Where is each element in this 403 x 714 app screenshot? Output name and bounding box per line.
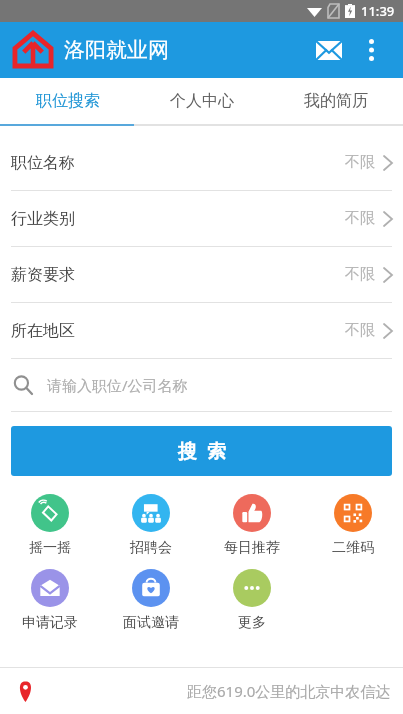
staticText: 11:39 xyxy=(361,2,395,20)
staticText: 请输入职位/公司名称 xyxy=(47,375,188,395)
staticText: 招聘会 xyxy=(130,539,172,557)
staticText: 摇一摇 xyxy=(29,539,71,557)
button[interactable]: Messages xyxy=(307,28,351,72)
staticText: 行业类别 xyxy=(11,209,75,229)
staticText: 我的简历 xyxy=(304,91,368,111)
button[interactable]: 搜 索 xyxy=(11,426,392,476)
button[interactable]: 面试邀请 xyxy=(100,569,201,632)
button[interactable]: 二维码 xyxy=(302,494,403,557)
staticText: 不限 xyxy=(345,321,375,340)
button[interactable]: 更多 xyxy=(201,569,302,632)
button[interactable]: 申请记录 xyxy=(0,569,100,632)
button[interactable]: 摇一摇 xyxy=(0,494,100,557)
staticText: 洛阳就业网 xyxy=(64,37,169,63)
button[interactable]: Location xyxy=(12,678,38,704)
staticText: 面试邀请 xyxy=(123,614,179,632)
staticText: 更多 xyxy=(238,614,266,632)
staticText: 申请记录 xyxy=(22,614,78,632)
button[interactable]: 职位搜索 xyxy=(0,78,135,124)
button[interactable]: 薪资要求 xyxy=(0,247,403,303)
staticText: 每日推荐 xyxy=(224,539,280,557)
staticText: 不限 xyxy=(345,265,375,284)
staticText: 距您619.0公里的北京中农信达 xyxy=(187,681,391,701)
button[interactable]: 行业类别 xyxy=(0,191,403,247)
button[interactable]: 我的简历 xyxy=(269,78,403,124)
button[interactable]: 所在地区 xyxy=(0,303,403,359)
staticText: 搜 索 xyxy=(178,438,226,464)
button[interactable]: 职位名称 xyxy=(0,135,403,191)
button[interactable]: More options xyxy=(351,30,391,70)
staticText: 职位名称 xyxy=(11,153,75,173)
staticText: 二维码 xyxy=(332,539,374,557)
staticText: 不限 xyxy=(345,209,375,228)
button[interactable]: 个人中心 xyxy=(135,78,269,124)
staticText: 个人中心 xyxy=(170,91,234,111)
button[interactable]: 请输入职位/公司名称 xyxy=(0,359,403,412)
staticText: 不限 xyxy=(345,153,375,172)
staticText: 薪资要求 xyxy=(11,265,75,285)
staticText: 所在地区 xyxy=(11,321,75,341)
staticText: 职位搜索 xyxy=(36,91,100,111)
button[interactable]: 每日推荐 xyxy=(201,494,302,557)
button[interactable]: 招聘会 xyxy=(100,494,201,557)
